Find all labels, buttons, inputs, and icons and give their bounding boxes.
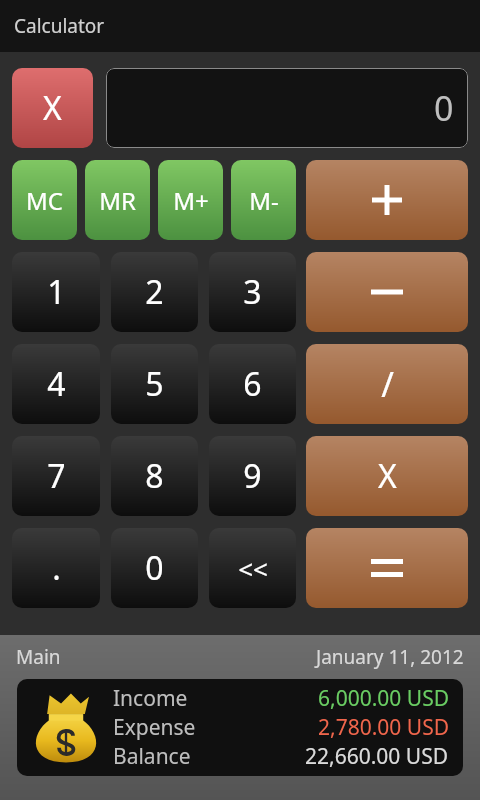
- button[interactable]: M+: [158, 160, 223, 240]
- button[interactable]: Minus: [306, 252, 468, 332]
- staticText: 9: [243, 454, 262, 498]
- staticText: 0: [434, 85, 454, 131]
- staticText: M+: [173, 184, 209, 217]
- button[interactable]: 4: [12, 344, 100, 424]
- button[interactable]: 1: [12, 252, 100, 332]
- staticText: 4: [47, 362, 66, 406]
- staticText: Balance: [113, 742, 191, 771]
- staticText: Expense: [113, 713, 196, 742]
- button[interactable]: .: [12, 528, 100, 608]
- staticText: Income: [113, 684, 188, 713]
- staticText: <<: [238, 551, 268, 586]
- button[interactable]: 8: [111, 436, 198, 516]
- staticText: MR: [99, 184, 136, 217]
- button[interactable]: <<: [209, 528, 296, 608]
- button[interactable]: X: [306, 436, 468, 516]
- staticText: January 11, 2012: [316, 644, 464, 670]
- staticText: 3: [243, 270, 262, 314]
- staticText: X: [378, 454, 397, 498]
- staticText: /: [381, 361, 394, 407]
- button[interactable]: 6: [209, 344, 296, 424]
- staticText: 0: [145, 546, 164, 590]
- button[interactable]: Income: [17, 679, 463, 776]
- staticText: 5: [145, 362, 164, 406]
- staticText: 2,780.00 USD: [318, 713, 449, 742]
- staticText: 6,000.00 USD: [318, 684, 449, 713]
- staticText: 22,660.00 USD: [305, 742, 449, 771]
- staticText: Main: [16, 644, 61, 670]
- staticText: 2: [145, 270, 164, 314]
- button[interactable]: Plus: [306, 160, 468, 240]
- button[interactable]: /: [306, 344, 468, 424]
- button[interactable]: 7: [12, 436, 100, 516]
- button[interactable]: 3: [209, 252, 296, 332]
- button[interactable]: 5: [111, 344, 198, 424]
- button[interactable]: 0: [111, 528, 198, 608]
- button[interactable]: 9: [209, 436, 296, 516]
- staticText: M-: [249, 184, 279, 217]
- button[interactable]: MC: [12, 160, 77, 240]
- staticText: 6: [243, 362, 262, 406]
- button[interactable]: X: [12, 68, 93, 148]
- staticText: Calculator: [14, 13, 105, 39]
- staticText: X: [43, 86, 62, 130]
- button[interactable]: 2: [111, 252, 198, 332]
- staticText: 1: [47, 270, 66, 314]
- button[interactable]: M-: [231, 160, 296, 240]
- button[interactable]: 0: [106, 68, 468, 148]
- button[interactable]: MR: [85, 160, 150, 240]
- staticText: 7: [47, 454, 66, 498]
- button[interactable]: Equals: [306, 528, 468, 608]
- staticText: MC: [26, 184, 63, 217]
- staticText: .: [52, 546, 61, 590]
- staticText: 8: [145, 454, 164, 498]
